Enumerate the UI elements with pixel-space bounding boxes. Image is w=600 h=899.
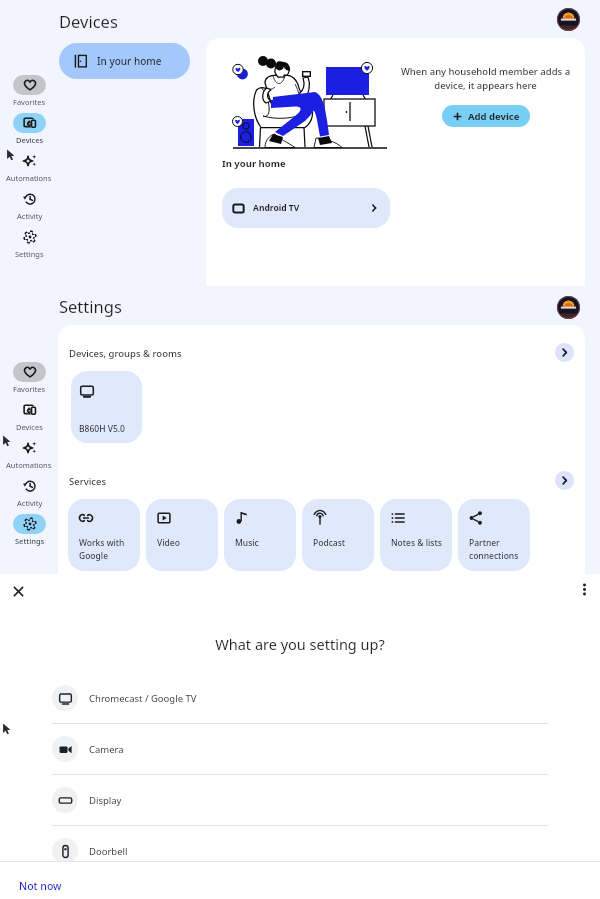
- staticText: B860H V5.0: [79, 423, 125, 435]
- button[interactable]: Account: [557, 8, 580, 31]
- staticText: Settings: [15, 249, 44, 259]
- staticText: In your home: [97, 54, 162, 68]
- staticText: Add device: [468, 110, 520, 123]
- staticText: Android TV: [253, 202, 300, 214]
- button[interactable]: Add device: [442, 105, 530, 127]
- button[interactable]: Favorites: [13, 362, 46, 400]
- staticText: Favorites: [13, 384, 46, 394]
- staticText: Display: [89, 794, 122, 807]
- staticText: Settings: [59, 295, 122, 317]
- staticText: Devices: [59, 10, 118, 32]
- staticText: Devices, groups & rooms: [69, 347, 182, 360]
- staticText: Services: [69, 475, 107, 488]
- button[interactable]: Podcast: [302, 499, 374, 571]
- button[interactable]: Automations: [6, 151, 52, 189]
- staticText: Podcast: [313, 537, 346, 549]
- button[interactable]: Camera: [52, 724, 548, 774]
- button[interactable]: Activity: [13, 189, 46, 227]
- button[interactable]: Automations: [6, 438, 52, 476]
- staticText: Favorites: [13, 97, 46, 107]
- staticText: Automations: [6, 460, 52, 470]
- staticText: Devices: [16, 422, 43, 432]
- staticText: When any household member adds a device,…: [399, 65, 572, 92]
- button[interactable]: Devices: [13, 400, 46, 438]
- button[interactable]: Chromecast / Google TV: [52, 673, 548, 723]
- staticText: Activity: [17, 498, 43, 508]
- staticText: In your home: [222, 157, 286, 170]
- staticText: Devices: [16, 135, 44, 145]
- button[interactable]: Display: [52, 775, 548, 825]
- staticText: Settings: [15, 536, 45, 546]
- button[interactable]: Settings: [13, 514, 46, 552]
- staticText: Doorbell: [89, 845, 128, 858]
- button[interactable]: Partner connections: [458, 499, 530, 571]
- staticText: Activity: [17, 211, 43, 221]
- button[interactable]: Close: [6, 579, 30, 603]
- staticText: What are you setting up?: [0, 634, 600, 654]
- staticText: Camera: [89, 743, 124, 756]
- button[interactable]: Not now: [19, 879, 62, 893]
- button[interactable]: Account: [557, 296, 580, 319]
- staticText: Notes & lists: [391, 537, 442, 549]
- button[interactable]: Music: [224, 499, 296, 571]
- button[interactable]: Settings: [13, 227, 46, 265]
- button[interactable]: More options: [574, 579, 594, 599]
- button[interactable]: More services: [555, 471, 574, 490]
- button[interactable]: More devices: [555, 343, 574, 362]
- button[interactable]: Doorbell: [52, 826, 548, 876]
- staticText: Automations: [6, 173, 52, 183]
- button[interactable]: Notes & lists: [380, 499, 452, 571]
- staticText: Video: [157, 537, 180, 549]
- staticText: Music: [235, 537, 259, 549]
- staticText: Chromecast / Google TV: [89, 692, 197, 705]
- staticText: Works with Google: [79, 537, 125, 562]
- button[interactable]: In your home: [59, 43, 190, 79]
- button[interactable]: Android TV: [222, 188, 390, 228]
- button[interactable]: Works with Google: [68, 499, 140, 571]
- button[interactable]: B860H V5.0: [71, 371, 142, 443]
- button[interactable]: Devices: [13, 113, 46, 151]
- staticText: Partner connections: [469, 537, 519, 562]
- button[interactable]: Video: [146, 499, 218, 571]
- button[interactable]: Activity: [13, 476, 46, 514]
- button[interactable]: Favorites: [13, 75, 46, 113]
